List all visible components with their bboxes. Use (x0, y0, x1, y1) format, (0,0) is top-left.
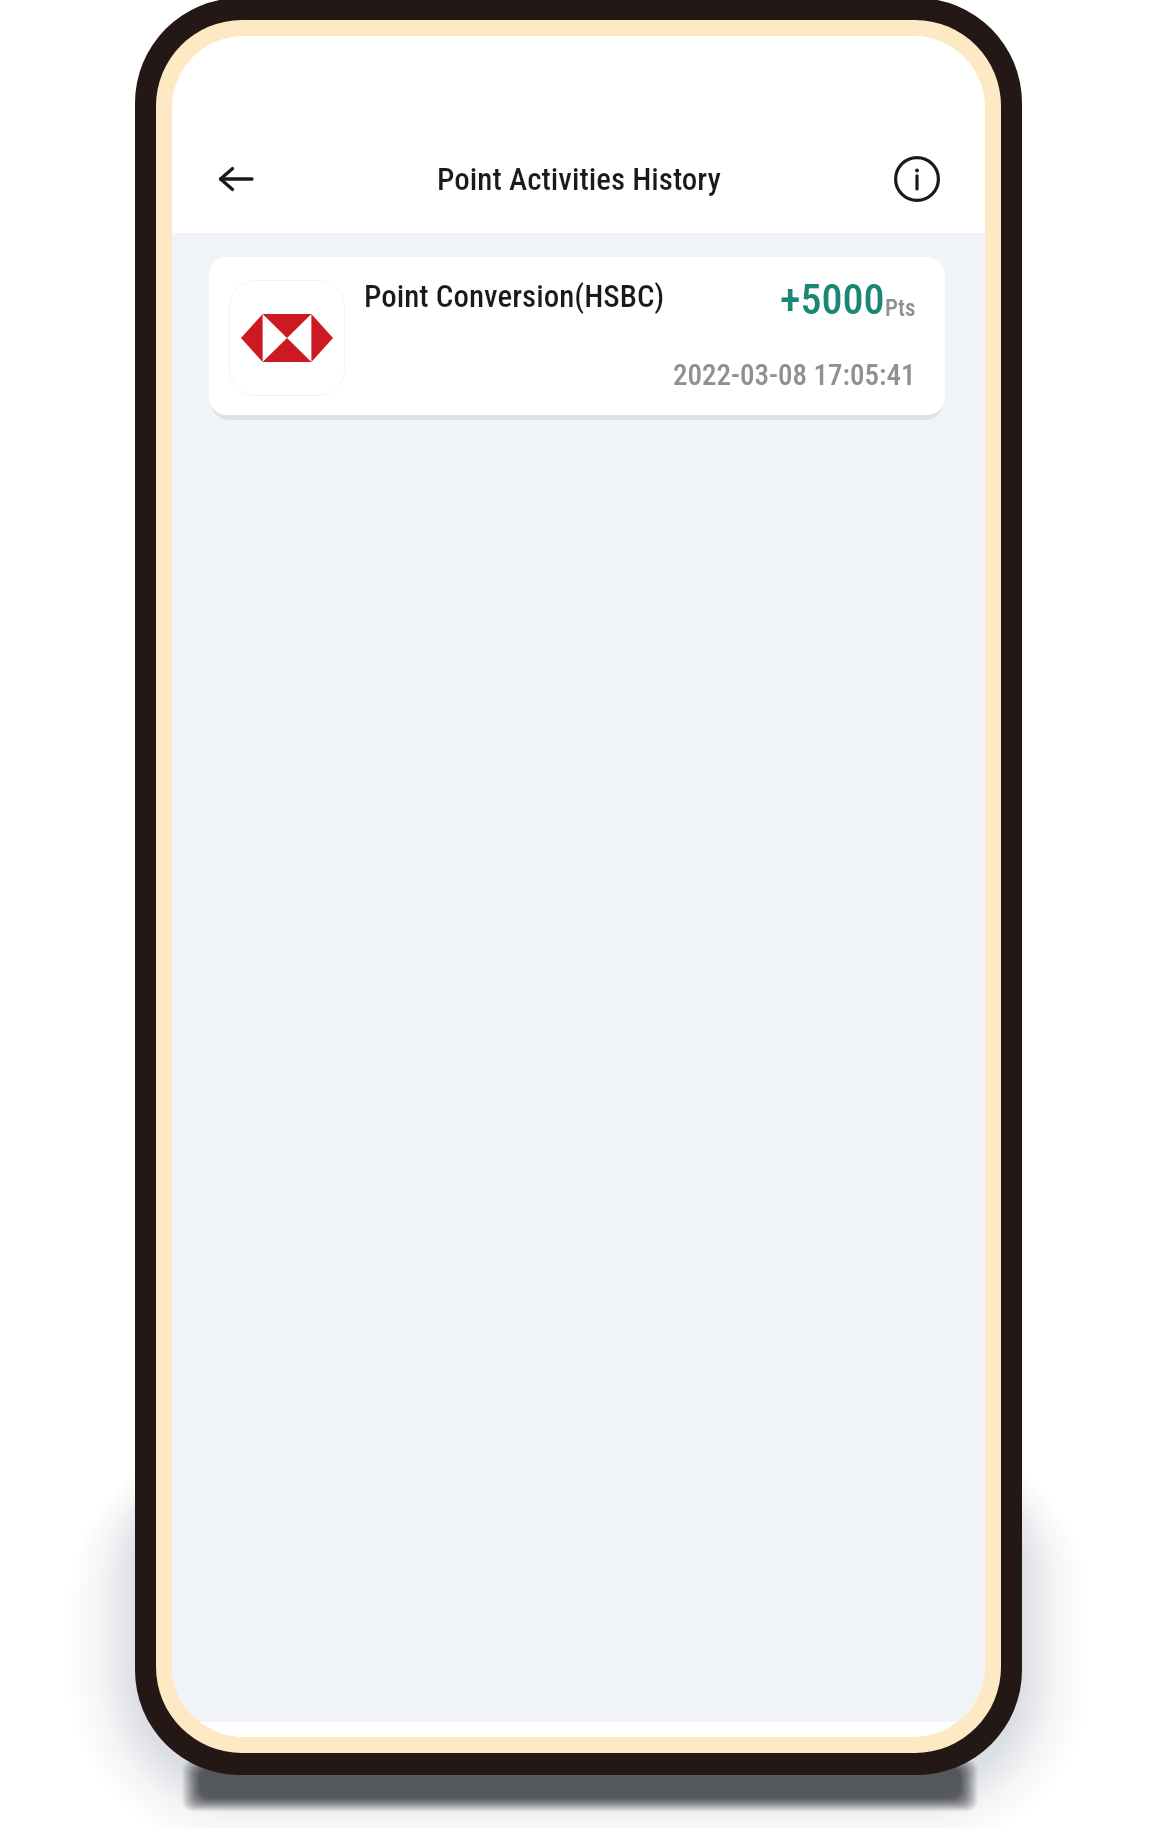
button[interactable]: Point Conversion(HSBC) (209, 257, 945, 415)
staticText: Pts (885, 295, 916, 322)
button[interactable]: Back (203, 147, 267, 211)
staticText: 2022-03-08 17:05:41 (673, 358, 916, 392)
button[interactable]: Information (885, 147, 949, 211)
staticText: Point Activities History (437, 161, 721, 197)
staticText: +5000 (780, 275, 885, 324)
staticText: Point Conversion(HSBC) (364, 278, 665, 314)
